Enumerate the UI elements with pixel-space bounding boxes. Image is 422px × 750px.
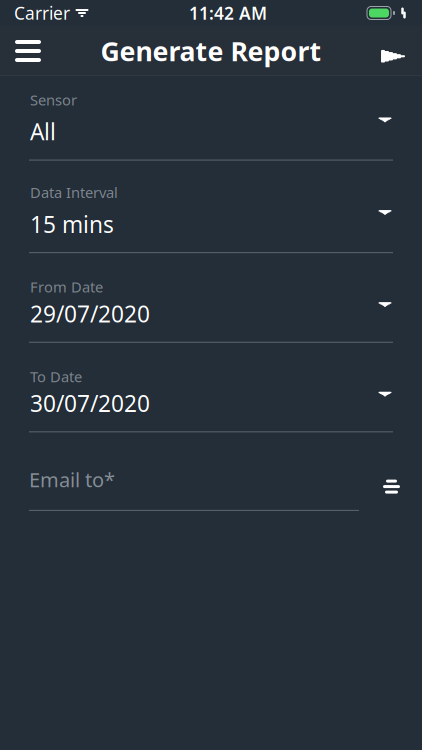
staticText: 15 mins	[30, 209, 114, 239]
staticText: 29/07/2020	[30, 299, 150, 329]
button[interactable]: To Date	[0, 367, 422, 432]
staticText: 11:42 AM	[189, 1, 267, 24]
button[interactable]: Email to*	[0, 466, 422, 511]
staticText: Email to*	[29, 466, 115, 493]
staticText: From Date	[30, 277, 103, 297]
button[interactable]: Sensor	[0, 90, 422, 161]
staticText: Generate Report	[100, 33, 321, 69]
staticText: Data Interval	[30, 183, 118, 202]
staticText: Carrier	[14, 1, 70, 24]
button[interactable]: Menu	[0, 26, 56, 76]
button[interactable]: Send	[366, 26, 422, 76]
button[interactable]: Data Interval	[0, 183, 422, 253]
staticText: All	[30, 116, 56, 147]
staticText: Sensor	[30, 90, 77, 109]
button[interactable]: From Date	[0, 277, 422, 343]
staticText: To Date	[30, 367, 82, 386]
staticText: 30/07/2020	[30, 388, 150, 418]
